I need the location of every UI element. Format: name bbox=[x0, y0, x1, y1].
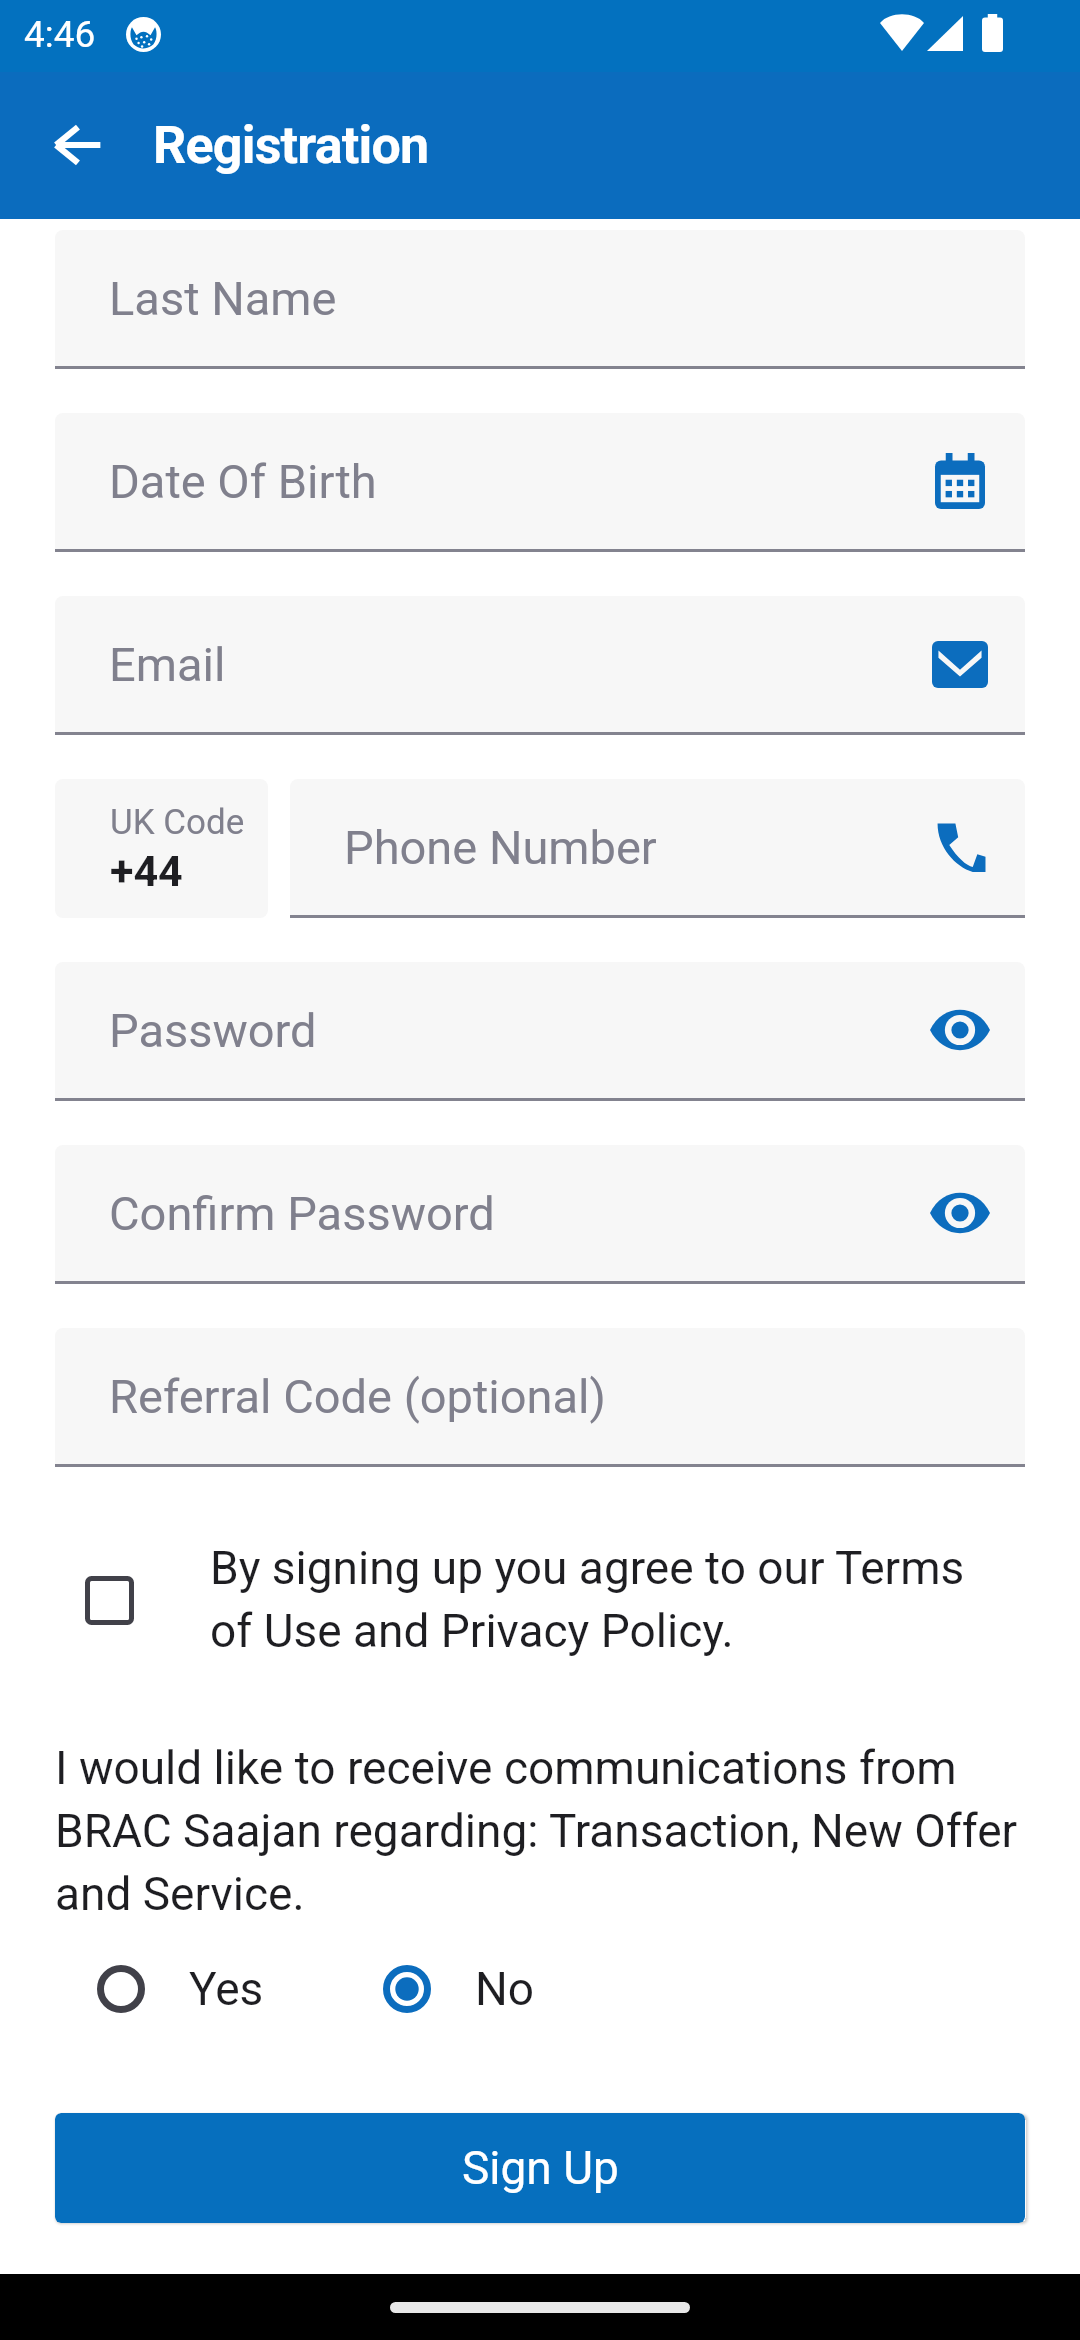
button[interactable]: Email bbox=[923, 627, 997, 701]
staticText: Yes bbox=[189, 1962, 264, 2016]
button[interactable]: UK Code bbox=[55, 779, 268, 918]
button[interactable]: Show confirm password bbox=[923, 1176, 997, 1250]
staticText: Confirm Password bbox=[109, 1186, 495, 1241]
staticText: Last Name bbox=[109, 271, 337, 326]
button[interactable]: Date Of Birth bbox=[55, 413, 1025, 549]
button[interactable]: Back bbox=[34, 102, 120, 188]
staticText: No bbox=[475, 1962, 535, 2016]
staticText: UK Code bbox=[110, 802, 245, 843]
button[interactable]: Phone Number bbox=[290, 779, 1025, 915]
button[interactable]: Yes bbox=[55, 1948, 264, 2030]
button[interactable]: Referral Code (optional) bbox=[55, 1328, 1025, 1464]
button[interactable]: Phone number bbox=[923, 810, 997, 884]
staticText: Date Of Birth bbox=[109, 454, 377, 509]
button[interactable]: Show password bbox=[923, 993, 997, 1067]
button[interactable]: Confirm Password bbox=[55, 1145, 1025, 1281]
staticText: Referral Code (optional) bbox=[109, 1369, 606, 1424]
staticText: I would like to receive communications f… bbox=[55, 1741, 1025, 1921]
button[interactable]: Email bbox=[55, 596, 1025, 732]
staticText: +44 bbox=[110, 846, 183, 896]
button[interactable]: By signing up you agree to our Terms of … bbox=[55, 1541, 1000, 1658]
staticText: Phone Number bbox=[344, 820, 657, 875]
button[interactable]: Password bbox=[55, 962, 1025, 1098]
button[interactable]: Last Name bbox=[55, 230, 1025, 366]
staticText: Registration bbox=[153, 115, 429, 176]
staticText: 4:46 bbox=[24, 13, 96, 56]
button[interactable]: No bbox=[341, 1948, 535, 2030]
button[interactable]: Sign Up bbox=[55, 2113, 1025, 2223]
staticText: Email bbox=[109, 637, 226, 692]
staticText: Sign Up bbox=[462, 2141, 619, 2195]
button[interactable]: Pick date of birth bbox=[923, 444, 997, 518]
staticText: By signing up you agree to our Terms of … bbox=[210, 1541, 1000, 1658]
staticText: Password bbox=[109, 1003, 317, 1058]
